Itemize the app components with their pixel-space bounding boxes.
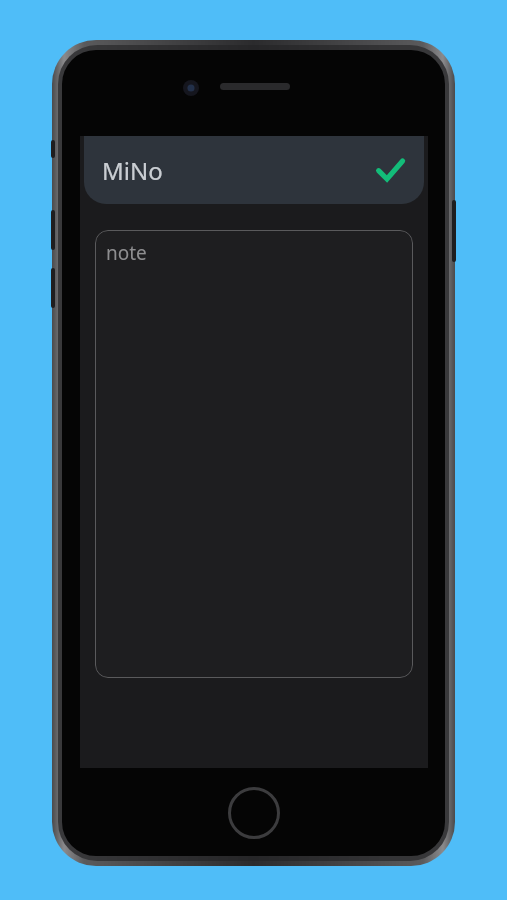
button[interactable]: note: [95, 230, 413, 678]
staticText: MiNo: [102, 154, 163, 187]
other: Home: [228, 787, 280, 839]
button[interactable]: Save note: [366, 146, 414, 194]
staticText: note: [106, 240, 147, 266]
button[interactable]: MiNo: [84, 136, 424, 204]
